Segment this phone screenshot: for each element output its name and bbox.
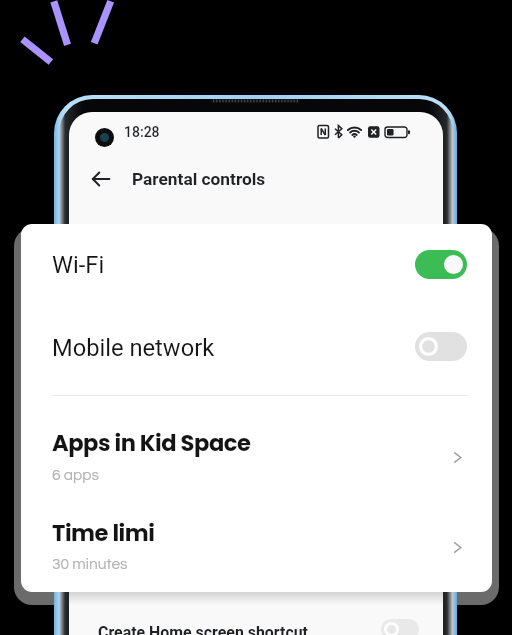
staticText: Parental controls <box>132 169 266 189</box>
button[interactable]: Mobile network <box>21 321 492 397</box>
staticText: Mobile network <box>52 334 215 362</box>
staticText: Apps in Kid Space <box>52 427 251 459</box>
button[interactable]: Time limi <box>21 499 492 575</box>
button[interactable]: Back <box>87 165 115 193</box>
button[interactable]: Apps in Kid Space <box>21 409 492 485</box>
staticText: Create Home screen shortcut <box>98 623 308 635</box>
staticText: 6 apps <box>52 467 99 483</box>
staticText: Time limi <box>52 517 155 549</box>
staticText: Wi-Fi <box>52 251 105 279</box>
staticText: 30 minutes <box>52 556 128 572</box>
staticText: 18:28 <box>124 124 160 140</box>
button[interactable]: Wi-Fi <box>21 238 492 314</box>
